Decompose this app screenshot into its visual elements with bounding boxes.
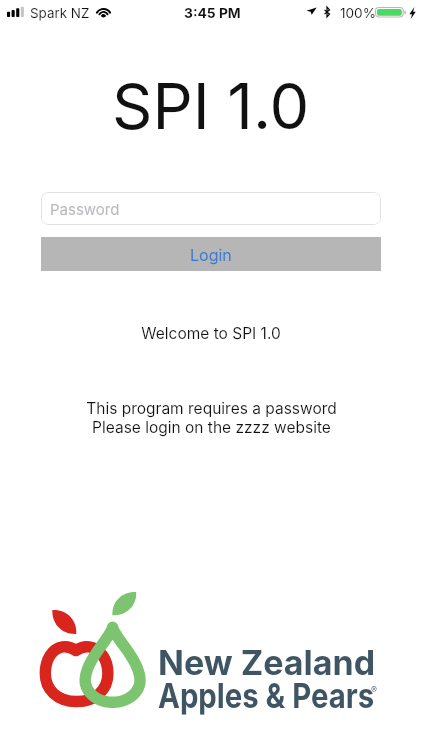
staticText: New Zealand: [158, 642, 376, 683]
staticText: Apples & Pears: [158, 675, 374, 716]
staticText: 100%: [340, 5, 377, 21]
staticText: Spark NZ: [30, 5, 90, 21]
staticText: 3:45 PM: [184, 5, 241, 22]
staticText: This program requires a password Please …: [86, 399, 337, 437]
button[interactable]: Login: [41, 237, 381, 271]
staticText: SPI 1.0: [112, 68, 310, 144]
button[interactable]: Password: [41, 192, 381, 225]
staticText: Password: [50, 200, 120, 218]
staticText: Welcome to SPI 1.0: [141, 324, 281, 343]
staticText: Login: [190, 245, 232, 264]
staticText: ®: [371, 684, 378, 695]
